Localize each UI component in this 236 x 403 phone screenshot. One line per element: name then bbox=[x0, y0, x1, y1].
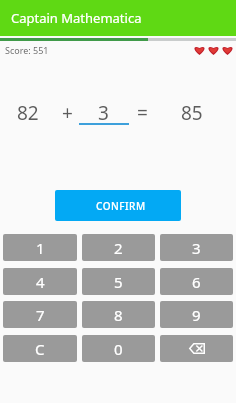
staticText: 4 bbox=[36, 272, 45, 292]
button[interactable]: 8 bbox=[82, 301, 155, 328]
staticText: + bbox=[62, 100, 73, 126]
staticText: Score: 551 bbox=[5, 44, 49, 56]
button[interactable]: 7 bbox=[3, 301, 77, 328]
staticText: 85 bbox=[181, 100, 203, 126]
button[interactable]: 6 bbox=[160, 268, 233, 295]
button[interactable]: 1 bbox=[3, 234, 77, 261]
staticText: 2 bbox=[114, 238, 123, 258]
staticText: 6 bbox=[192, 272, 201, 292]
button[interactable]: C bbox=[3, 335, 77, 362]
staticText: = bbox=[137, 100, 148, 126]
staticText: CONFIRM bbox=[96, 199, 146, 213]
staticText: 9 bbox=[192, 305, 201, 325]
staticText: 5 bbox=[114, 272, 123, 292]
staticText: Captain Mathematica bbox=[11, 9, 142, 27]
staticText: 3 bbox=[98, 100, 109, 126]
button[interactable]: 5 bbox=[82, 268, 155, 295]
button[interactable]: 3 bbox=[160, 234, 233, 261]
staticText: C bbox=[35, 339, 45, 359]
button[interactable]: 4 bbox=[3, 268, 77, 295]
staticText: 0 bbox=[114, 339, 123, 359]
staticText: 7 bbox=[36, 305, 45, 325]
button[interactable]: CONFIRM bbox=[55, 190, 181, 221]
button[interactable]: 9 bbox=[160, 301, 233, 328]
button[interactable]: Backspace bbox=[160, 335, 233, 362]
button[interactable]: 0 bbox=[82, 335, 155, 362]
staticText: 3 bbox=[192, 238, 201, 258]
staticText: 1 bbox=[36, 238, 45, 258]
button[interactable]: 2 bbox=[82, 234, 155, 261]
staticText: 8 bbox=[114, 305, 123, 325]
staticText: 82 bbox=[17, 100, 39, 126]
